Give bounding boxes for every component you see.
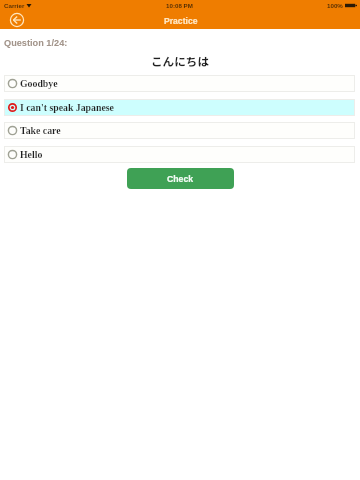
button[interactable]: Goodbye: [4, 75, 355, 92]
staticText: Practice: [164, 16, 198, 26]
button[interactable]: Take care: [4, 122, 355, 139]
button[interactable]: Check: [127, 168, 234, 189]
staticText: こんにちは: [0, 53, 360, 70]
staticText: Carrier: [4, 2, 25, 9]
staticText: Goodbye: [20, 78, 58, 89]
staticText: Question 1/24:: [4, 38, 68, 48]
staticText: I can't speak Japanese: [20, 102, 114, 113]
staticText: 100%: [327, 2, 343, 9]
staticText: 10:08 PM: [166, 2, 193, 9]
staticText: Hello: [20, 149, 43, 160]
button[interactable]: I can't speak Japanese: [4, 99, 355, 116]
staticText: Check: [167, 174, 194, 184]
button[interactable]: Hello: [4, 146, 355, 163]
button[interactable]: Back: [9, 12, 25, 28]
staticText: Take care: [20, 125, 61, 136]
